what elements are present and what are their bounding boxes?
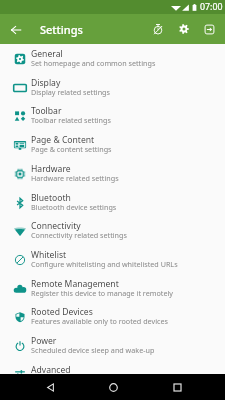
button[interactable]: Timer off: [146, 17, 170, 41]
button[interactable]: Connectivity: [0, 216, 225, 245]
staticText: Advanced settings: [31, 374, 93, 384]
staticText: Display related settings: [31, 87, 110, 97]
staticText: Connectivity: [31, 220, 81, 232]
button[interactable]: Recent apps: [165, 375, 189, 399]
button[interactable]: General: [0, 44, 225, 73]
staticText: Page & content settings: [31, 144, 112, 154]
button[interactable]: Settings: [172, 17, 196, 41]
button[interactable]: Rooted Devices: [0, 302, 225, 331]
staticText: Power: [31, 335, 57, 347]
staticText: Remote Management: [31, 278, 119, 290]
staticText: Display: [31, 77, 61, 89]
button[interactable]: Bluetooth: [0, 188, 225, 217]
staticText: Settings: [40, 22, 83, 37]
staticText: Toolbar: [31, 105, 62, 117]
button[interactable]: Toolbar: [0, 101, 225, 130]
staticText: Hardware related settings: [31, 173, 119, 183]
button[interactable]: Power: [0, 331, 225, 360]
button[interactable]: Back: [38, 375, 62, 399]
staticText: Bluetooth device settings: [31, 202, 117, 212]
staticText: General: [31, 48, 63, 60]
staticText: Rooted Devices: [31, 306, 93, 318]
button[interactable]: Hardware: [0, 159, 225, 188]
staticText: Toolbar related settings: [31, 115, 111, 125]
staticText: Advanced: [31, 364, 71, 376]
staticText: Whitelist: [31, 249, 67, 261]
staticText: Hardware: [31, 163, 71, 175]
staticText: Scheduled device sleep and wake-up: [31, 345, 155, 355]
button[interactable]: Advanced: [0, 360, 225, 389]
button[interactable]: Display: [0, 73, 225, 102]
staticText: 07:00: [200, 1, 223, 13]
button[interactable]: Remote Management: [0, 274, 225, 303]
staticText: Connectivity related settings: [31, 230, 127, 240]
staticText: Set homepage and common settings: [31, 58, 156, 68]
staticText: Register this device to manage it remote…: [31, 288, 173, 298]
staticText: Features available only to rooted device…: [31, 316, 168, 326]
button[interactable]: Home: [101, 375, 125, 399]
staticText: Page & Content: [31, 134, 95, 146]
button[interactable]: Page & Content: [0, 130, 225, 159]
button[interactable]: Navigate up: [4, 18, 27, 41]
button[interactable]: Whitelist: [0, 245, 225, 274]
button[interactable]: Exit: [197, 17, 221, 41]
staticText: Configure whitelisting and whitelisted U…: [31, 259, 178, 269]
staticText: Bluetooth: [31, 192, 71, 204]
